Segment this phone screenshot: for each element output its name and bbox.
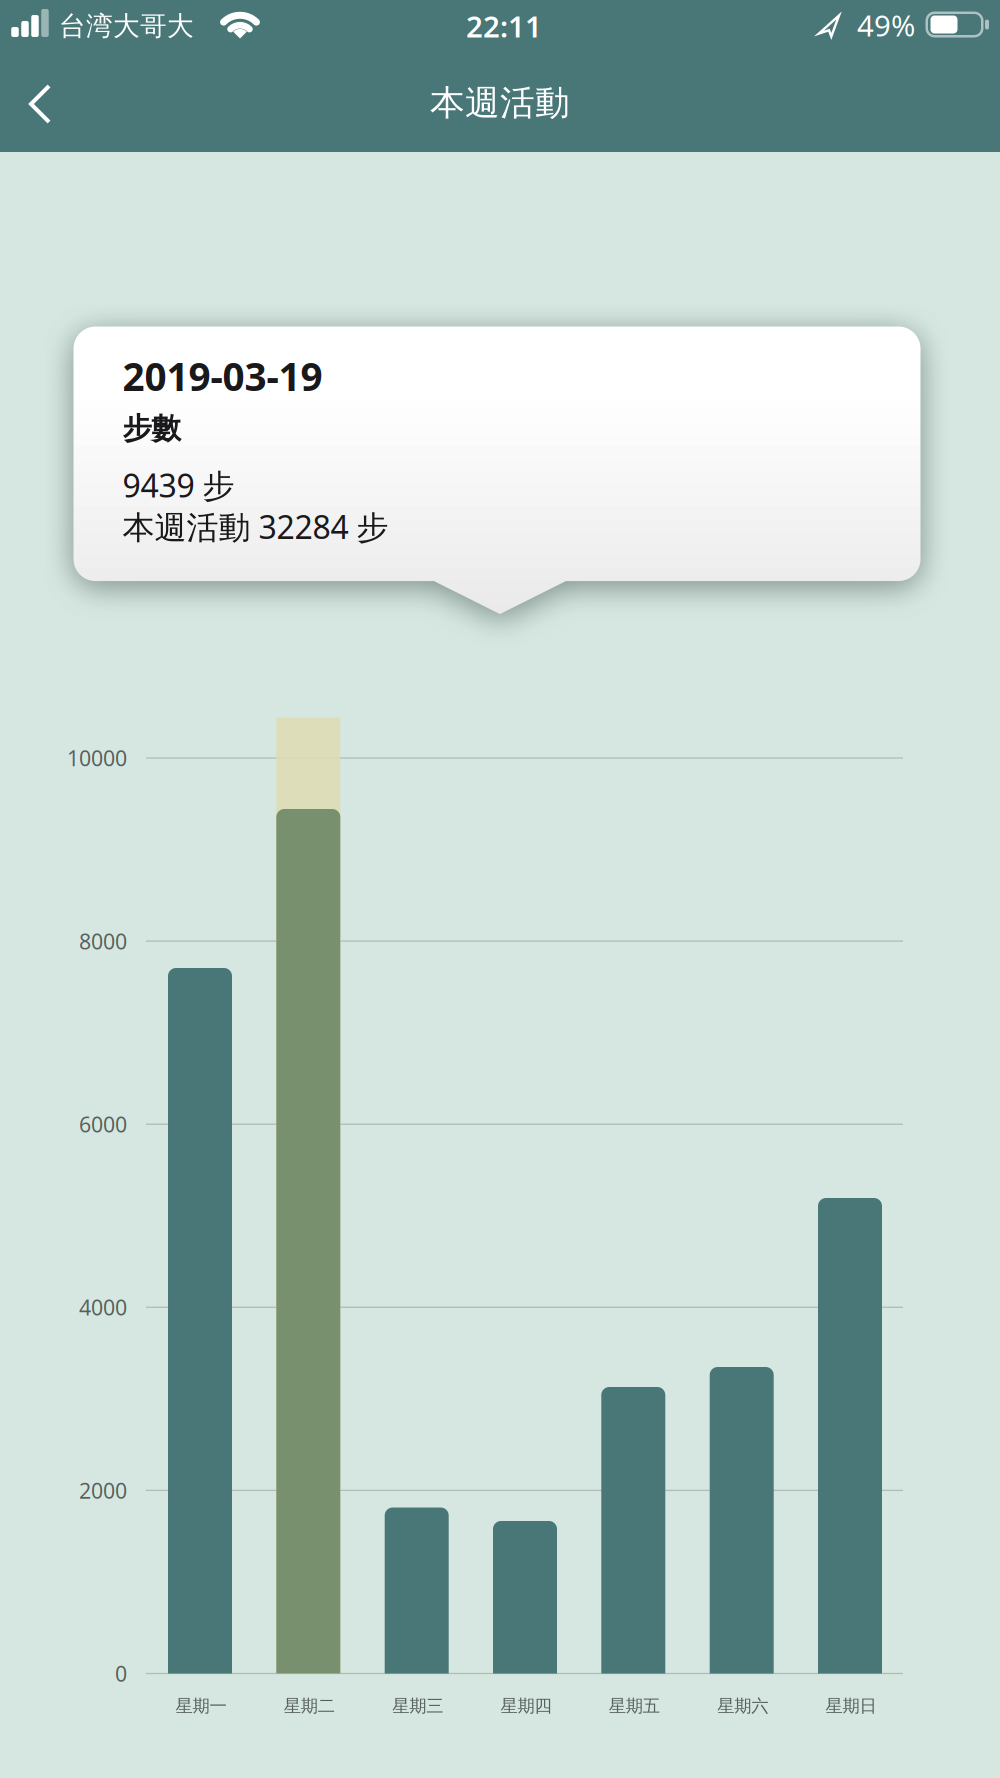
staticText: 星期一 xyxy=(175,1695,226,1717)
button[interactable]: 星期一 xyxy=(168,968,232,1673)
staticText: 9439 步 xyxy=(122,464,234,506)
staticText: 星期日 xyxy=(825,1695,876,1717)
staticText: 49% xyxy=(857,5,915,44)
button[interactable]: 星期四 xyxy=(493,1521,557,1673)
staticText: 22:11 xyxy=(466,6,542,45)
staticText: 2019-03-19 xyxy=(122,350,322,402)
staticText: 步數 xyxy=(122,410,180,446)
staticText: 8000 xyxy=(79,927,127,955)
staticText: 星期二 xyxy=(284,1695,335,1717)
staticText: 6000 xyxy=(79,1110,127,1138)
button[interactable]: 星期二 xyxy=(276,809,340,1673)
staticText: 星期四 xyxy=(500,1695,551,1717)
button[interactable]: 星期六 xyxy=(710,1367,774,1673)
staticText: 2000 xyxy=(79,1476,127,1504)
button[interactable]: 星期五 xyxy=(601,1387,665,1673)
staticText: 10000 xyxy=(67,744,127,772)
staticText: 4000 xyxy=(79,1293,127,1321)
staticText: 星期五 xyxy=(609,1695,660,1717)
staticText: 星期三 xyxy=(392,1695,443,1717)
button[interactable]: Back xyxy=(11,66,69,142)
staticText: 本週活動 xyxy=(430,82,570,124)
staticText: 台湾大哥大 xyxy=(59,10,194,42)
staticText: 0 xyxy=(115,1659,127,1688)
staticText: 本週活動 32284 步 xyxy=(122,505,388,548)
button[interactable]: 星期三 xyxy=(385,1507,449,1673)
button[interactable]: 星期日 xyxy=(818,1198,882,1673)
staticText: 星期六 xyxy=(717,1695,768,1717)
